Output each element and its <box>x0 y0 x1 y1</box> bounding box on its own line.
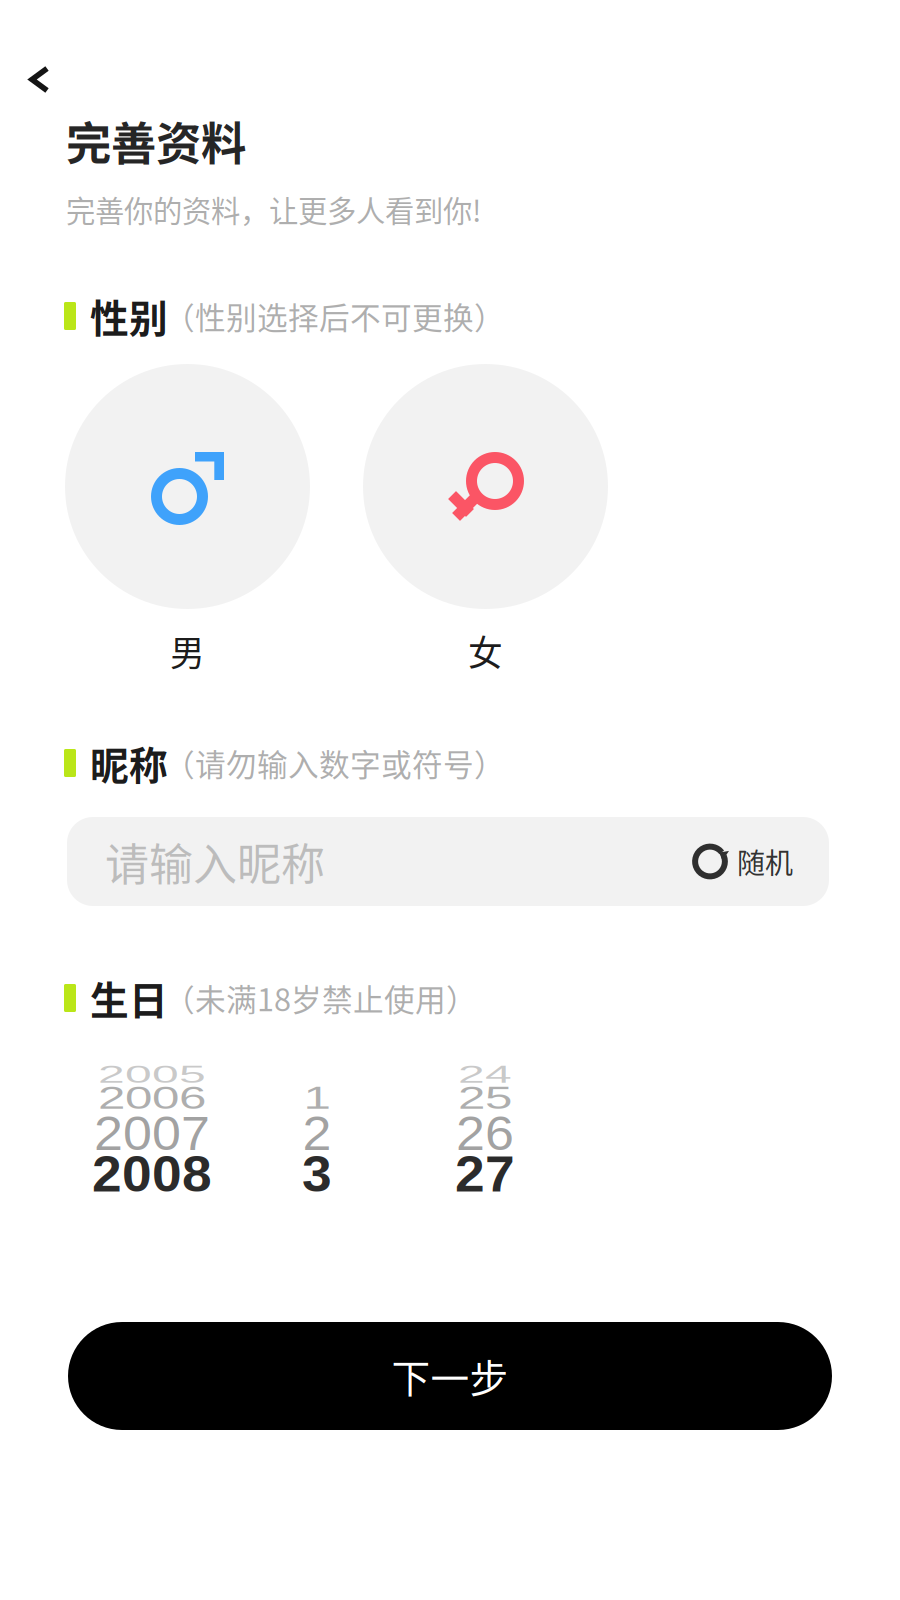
staticText: 生日 <box>90 970 168 1026</box>
staticText: 2 <box>302 1104 331 1162</box>
staticText: 完善你的资料，让更多人看到你! <box>66 188 481 230</box>
staticText: 2005 <box>98 1048 206 1101</box>
staticText: 随机 <box>737 841 793 882</box>
staticText: 2006 <box>98 1071 206 1126</box>
staticText: 26 <box>456 1104 514 1162</box>
staticText: 昵称 <box>90 735 168 791</box>
staticText: 24 <box>458 1048 512 1101</box>
button[interactable]: Day <box>400 1052 570 1200</box>
button[interactable]: 女 <box>363 364 608 672</box>
button[interactable]: 男 <box>65 364 310 672</box>
staticText: 25 <box>458 1071 512 1126</box>
staticText: 2008 <box>92 1144 212 1204</box>
button[interactable]: Year <box>67 1052 237 1200</box>
staticText: 3 <box>302 1144 332 1204</box>
staticText: 请输入昵称 <box>105 830 325 893</box>
staticText: 1 <box>303 1071 330 1126</box>
staticText: （未满18岁禁止使用） <box>164 976 477 1020</box>
staticText: 下一步 <box>391 1348 508 1404</box>
staticText: 完善资料 <box>66 108 246 174</box>
staticText: （请勿输入数字或符号） <box>164 741 505 785</box>
staticText: 女 <box>468 626 503 676</box>
button[interactable]: Back <box>0 0 83 107</box>
staticText: 27 <box>455 1144 515 1204</box>
button[interactable]: 随机 <box>692 827 793 896</box>
staticText: 2007 <box>94 1104 210 1162</box>
button[interactable]: 下一步 <box>68 1322 832 1430</box>
staticText: （性别选择后不可更换） <box>164 294 505 338</box>
staticText: 性别 <box>90 288 168 344</box>
button[interactable]: Month <box>232 1052 402 1200</box>
staticText: 男 <box>170 626 205 676</box>
